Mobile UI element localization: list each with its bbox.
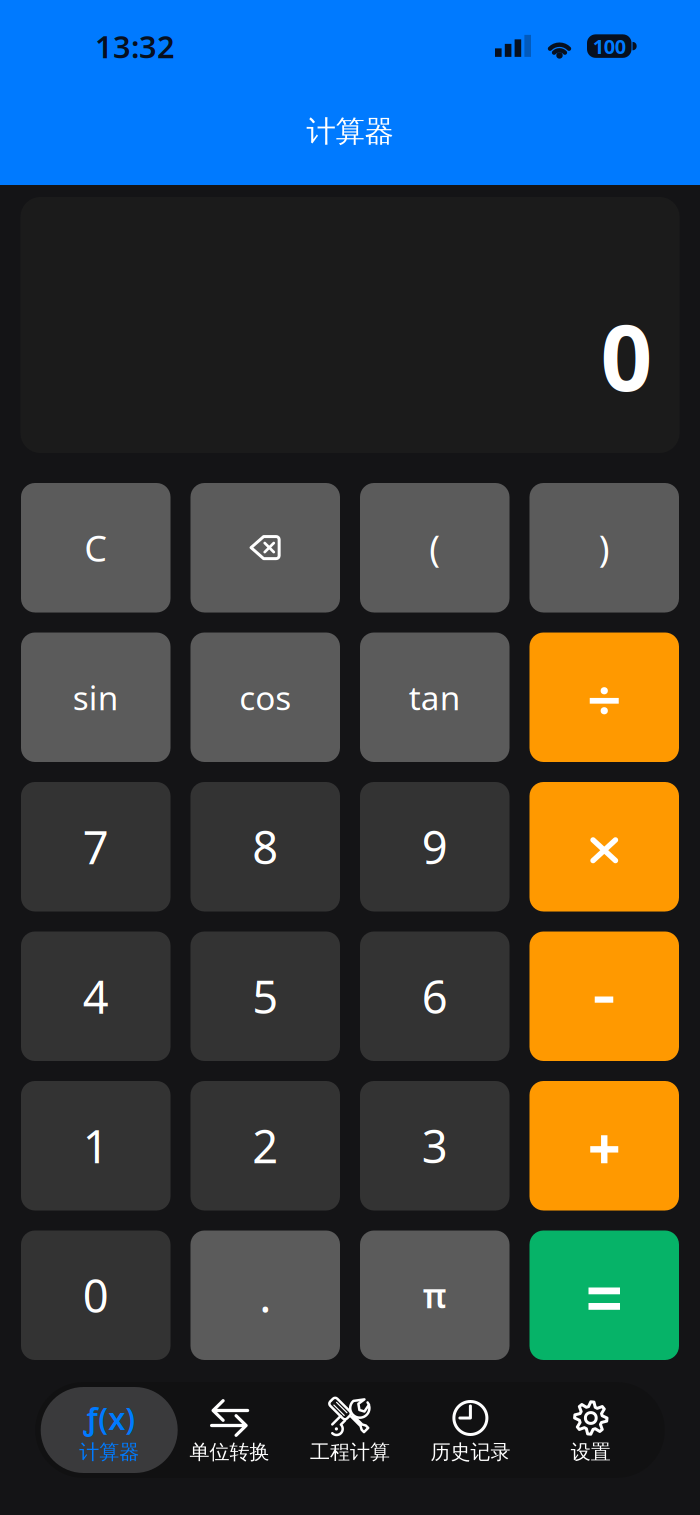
button[interactable]: 7	[21, 782, 170, 911]
staticText: 4	[83, 966, 109, 1026]
button[interactable]: Plus	[529, 1081, 679, 1210]
staticText: 单位转换	[190, 1440, 270, 1464]
button[interactable]: 3	[360, 1081, 509, 1210]
button[interactable]: π	[360, 1230, 509, 1360]
button[interactable]: 9	[360, 782, 509, 911]
staticText: 5	[252, 966, 278, 1026]
button[interactable]: 历史记录	[410, 1382, 531, 1478]
staticText: 计算器	[79, 1440, 139, 1464]
staticText: 2	[252, 1116, 278, 1176]
button[interactable]: sin	[21, 632, 170, 762]
button[interactable]: .	[190, 1230, 340, 1360]
staticText: 8	[252, 817, 278, 877]
staticText: )	[599, 524, 610, 572]
button[interactable]: Multiply	[529, 782, 679, 911]
staticText: 13:32	[95, 26, 175, 67]
staticText: (	[429, 524, 440, 572]
staticText: 7	[83, 817, 109, 877]
button[interactable]: 2	[190, 1081, 340, 1210]
button[interactable]: )	[529, 483, 679, 612]
button[interactable]: Minus	[529, 931, 679, 1061]
staticText: 计算器	[306, 113, 393, 149]
staticText: C	[84, 524, 107, 572]
button[interactable]: 6	[360, 931, 509, 1061]
button[interactable]: 单位转换	[169, 1382, 290, 1478]
staticText: cos	[239, 675, 291, 719]
staticText: π	[423, 1273, 447, 1317]
button[interactable]: ƒ(x)	[49, 1382, 169, 1478]
staticText: 9	[422, 817, 448, 877]
button[interactable]: Divide	[529, 632, 679, 762]
button[interactable]: 4	[21, 931, 170, 1061]
staticText: 工程计算	[310, 1440, 390, 1464]
staticText: 100	[593, 33, 626, 60]
button[interactable]: C	[21, 483, 170, 612]
button[interactable]: 工程计算	[290, 1382, 410, 1478]
button[interactable]: Equals	[529, 1230, 679, 1360]
button[interactable]: 0	[21, 1230, 170, 1360]
staticText: 3	[422, 1116, 448, 1176]
staticText: .	[259, 1265, 271, 1325]
button[interactable]: 5	[190, 931, 340, 1061]
staticText: 历史记录	[430, 1440, 510, 1464]
staticText: sin	[73, 675, 119, 719]
button[interactable]: cos	[190, 632, 340, 762]
staticText: 0	[600, 296, 652, 416]
staticText: 1	[83, 1116, 109, 1176]
staticText: tan	[409, 675, 461, 719]
staticText: 6	[422, 966, 448, 1026]
staticText: 设置	[571, 1440, 611, 1464]
button[interactable]: Delete	[190, 483, 340, 612]
button[interactable]: 8	[190, 782, 340, 911]
button[interactable]: 1	[21, 1081, 170, 1210]
staticText: 0	[83, 1265, 109, 1325]
button[interactable]: (	[360, 483, 509, 612]
button[interactable]: tan	[360, 632, 509, 762]
button[interactable]: 设置	[531, 1382, 651, 1478]
staticText: ƒ(x)	[83, 1398, 135, 1438]
